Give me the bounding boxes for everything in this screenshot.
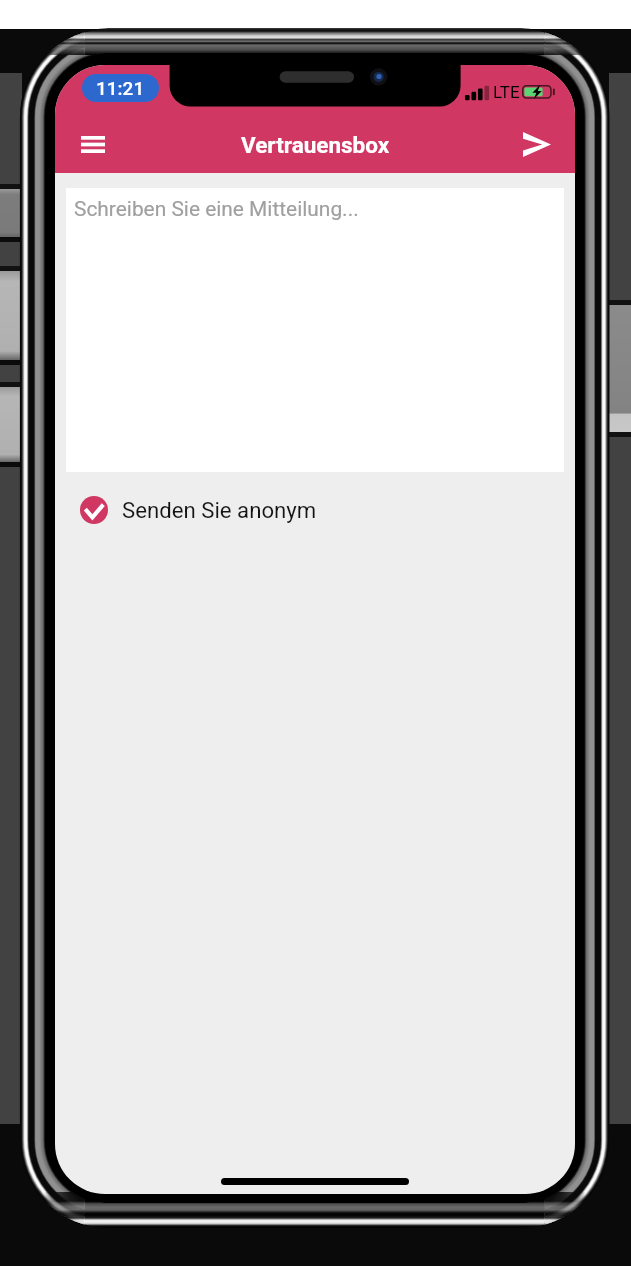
staticText: 11:21	[96, 77, 145, 99]
button[interactable]: Open navigation menu	[69, 124, 117, 165]
staticText: Vertrauensbox	[241, 132, 390, 158]
button[interactable]: Send message	[512, 122, 562, 166]
staticText: Senden Sie anonym	[122, 497, 317, 523]
button[interactable]: Senden Sie anonym	[80, 496, 317, 524]
staticText: Schreiben Sie eine Mitteilung...	[74, 197, 359, 221]
staticText: LTE	[493, 82, 520, 102]
